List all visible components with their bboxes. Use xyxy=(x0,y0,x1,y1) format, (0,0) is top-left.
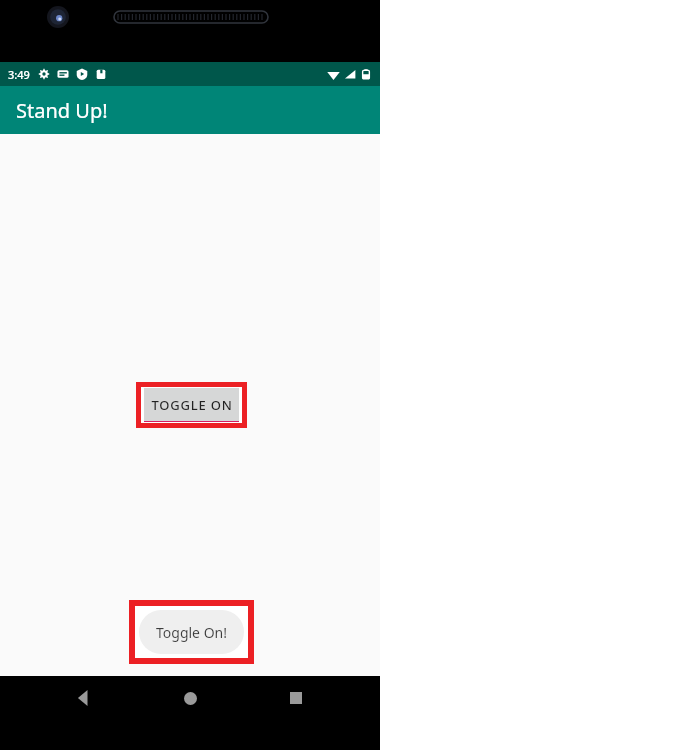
button[interactable]: Toggle On! xyxy=(135,606,248,658)
button[interactable]: TOGGLE ON xyxy=(144,388,239,422)
button[interactable]: Back xyxy=(62,676,106,720)
staticText: Toggle On! xyxy=(156,623,227,642)
staticText: 3:49 xyxy=(8,67,30,82)
button[interactable]: Recent apps xyxy=(274,676,318,720)
staticText: Stand Up! xyxy=(16,97,108,124)
staticText: TOGGLE ON xyxy=(151,396,233,414)
button[interactable]: Home xyxy=(168,676,212,720)
